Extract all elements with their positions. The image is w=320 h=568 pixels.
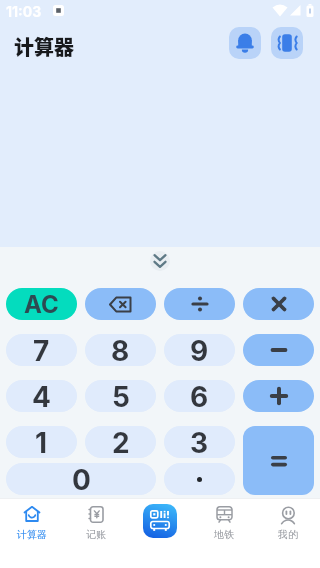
button[interactable]: [85, 288, 156, 320]
button[interactable]: 5: [85, 380, 156, 412]
staticText: 1: [35, 426, 48, 458]
button[interactable]: [229, 27, 261, 59]
staticText: 4: [32, 380, 51, 412]
button[interactable]: 8: [85, 334, 156, 366]
staticText: 7: [33, 334, 50, 366]
button[interactable]: 2: [85, 426, 156, 458]
button[interactable]: [164, 288, 235, 320]
button[interactable]: 9: [164, 334, 235, 366]
button[interactable]: [271, 27, 303, 59]
button[interactable]: [243, 334, 314, 366]
button[interactable]: [143, 504, 177, 538]
staticText: 地铁: [214, 528, 234, 541]
staticText: 计算器: [14, 32, 74, 61]
button[interactable]: 7: [6, 334, 77, 366]
staticText: 计算器: [17, 528, 47, 541]
button[interactable]: 我的: [264, 500, 312, 546]
staticText: 0: [72, 463, 91, 495]
staticText: AC: [24, 290, 59, 319]
button[interactable]: AC: [6, 288, 77, 320]
button[interactable]: 4: [6, 380, 77, 412]
staticText: 2: [112, 426, 130, 458]
button[interactable]: 0: [6, 463, 156, 495]
button[interactable]: [164, 463, 235, 495]
staticText: 9: [190, 334, 209, 366]
staticText: 6: [190, 380, 209, 412]
button[interactable]: [150, 251, 170, 271]
staticText: 11:03: [6, 3, 42, 20]
button[interactable]: 3: [164, 426, 235, 458]
staticText: 3: [190, 426, 209, 458]
button[interactable]: [243, 380, 314, 412]
button[interactable]: 记账: [72, 500, 120, 546]
staticText: 8: [111, 334, 130, 366]
button[interactable]: 1: [6, 426, 77, 458]
staticText: 记账: [86, 528, 106, 541]
button[interactable]: 地铁: [200, 500, 248, 546]
button[interactable]: [243, 426, 314, 495]
staticText: 5: [112, 380, 130, 412]
button[interactable]: [243, 288, 314, 320]
button[interactable]: 6: [164, 380, 235, 412]
staticText: 我的: [278, 528, 298, 541]
button[interactable]: 计算器: [8, 500, 56, 546]
